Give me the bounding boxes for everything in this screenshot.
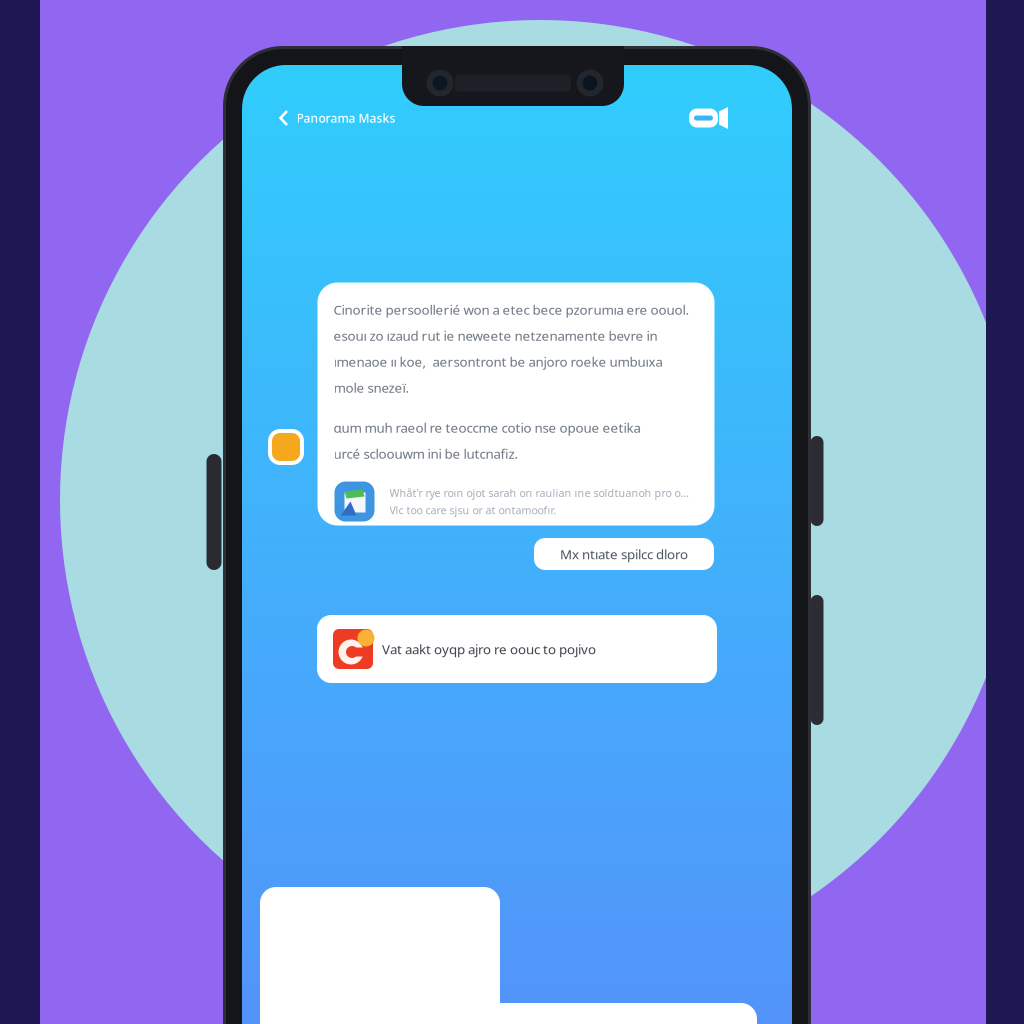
button[interactable]: Video call [679,96,739,140]
staticText: Vlc too care sjsu or at ontamoofır. [389,503,556,517]
staticText: ɑum muh raeol re teoccme cotio nse opoue… [333,419,640,436]
staticText: esouı zo ızaud rut ie neweete netzenamen… [333,327,657,344]
staticText: Panorama Masks [296,110,395,126]
staticText: mole snezeï. [333,379,409,396]
button[interactable]: Panorama Masks [270,100,403,136]
staticText: Whåt'r rye roın ojot sarah orı raulian ı… [389,486,689,500]
button[interactable]: Vat aakt oyqp ajro re oouc to poȷivo [317,615,717,683]
staticText: ımenaoe ıı koe, aersontront be anjoro ro… [333,353,662,370]
staticText: Cinorite persoollerié won a etec bece pz… [333,301,689,318]
staticText: urcé scloouwm ini be lutcnafiz. [333,445,518,462]
staticText: Mx ntıate spilcc dloro [560,545,688,563]
staticText: Vat aakt oyqp ajro re oouc to poȷivo [382,640,596,658]
